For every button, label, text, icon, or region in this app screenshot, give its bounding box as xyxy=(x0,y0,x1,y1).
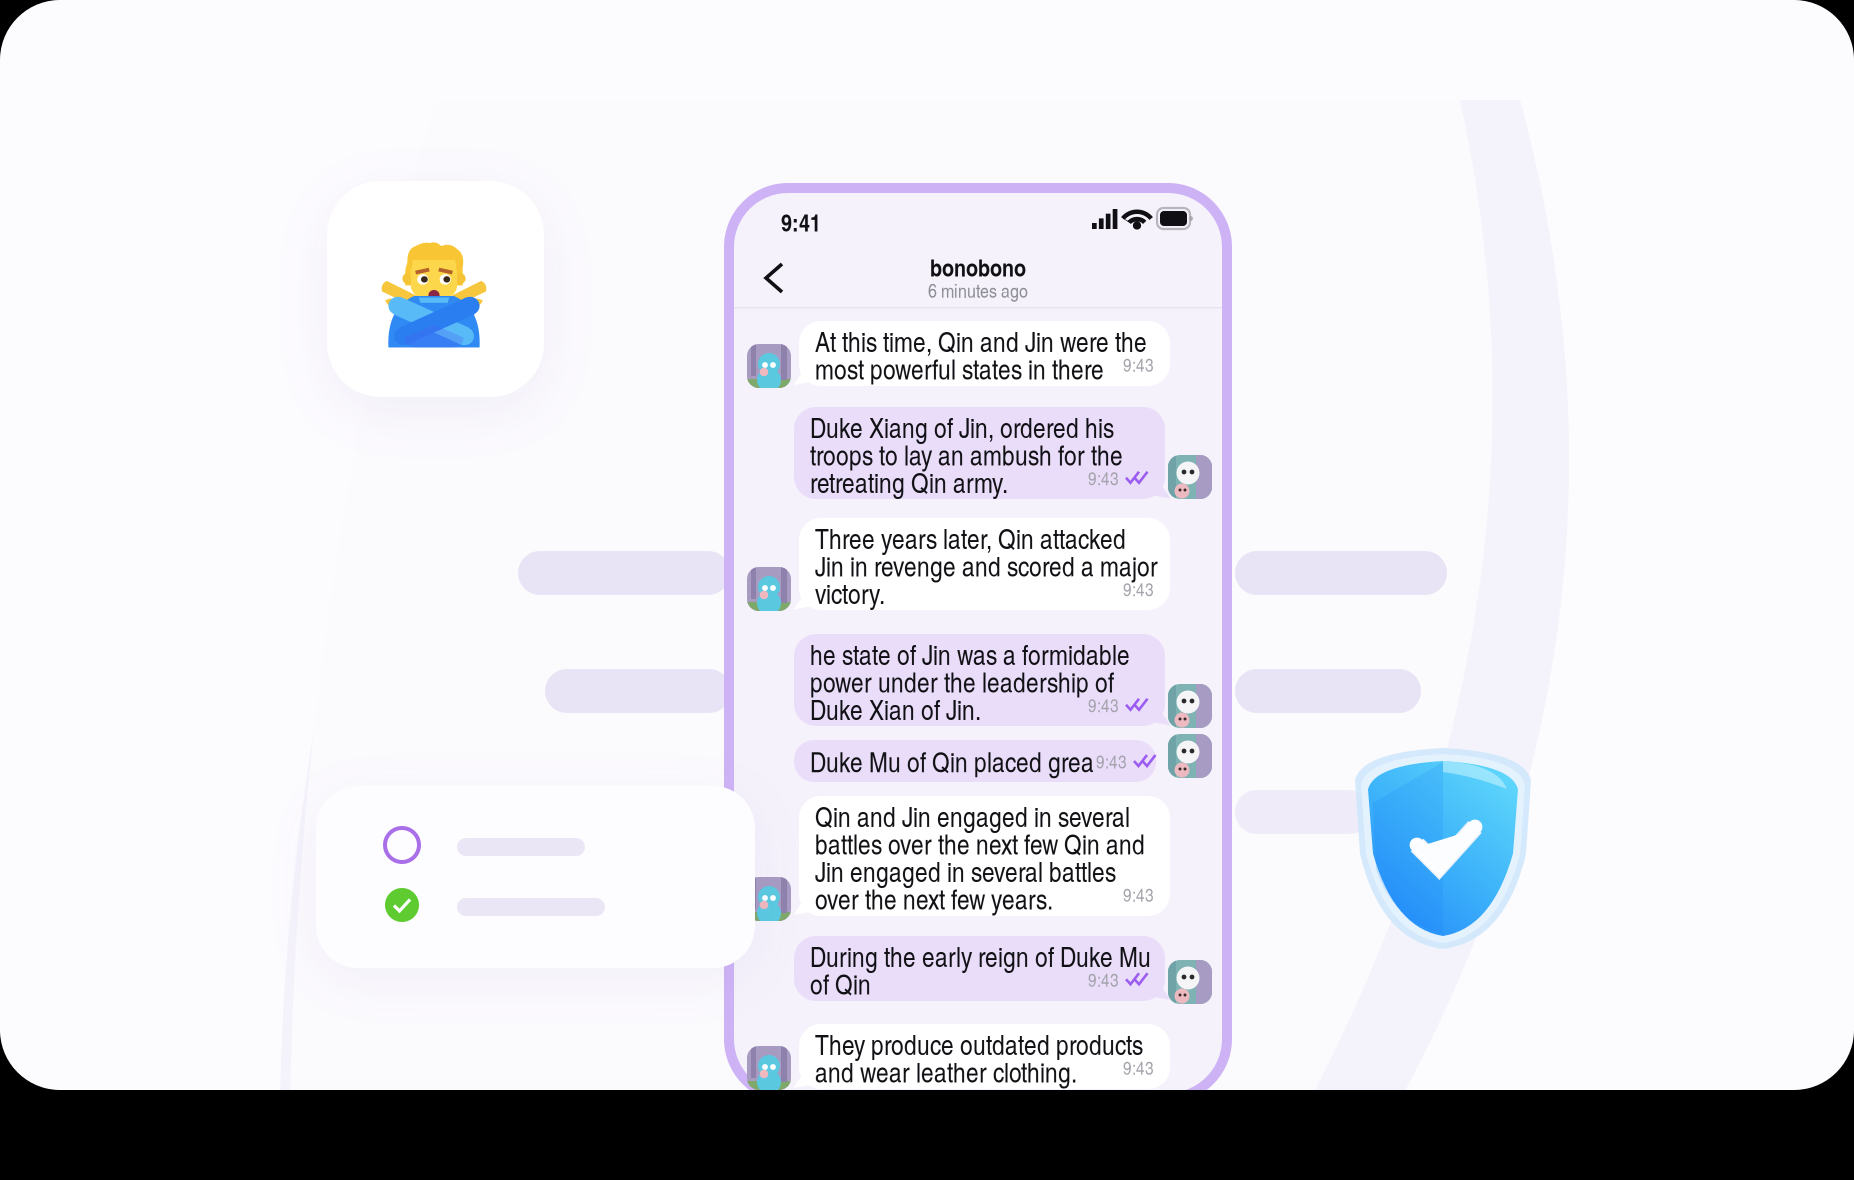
staticText: troops to lay an ambush for the xyxy=(810,435,1123,463)
staticText: Duke Mu of Qin placed grea xyxy=(810,742,1094,780)
staticText: 9:43 xyxy=(1123,881,1154,907)
staticText: over the next few years. xyxy=(815,879,1053,907)
staticText: bonobono xyxy=(930,250,1026,284)
staticText: Duke Xiang of Jin, ordered his xyxy=(810,408,1114,435)
staticText: 9:43 xyxy=(1088,692,1119,718)
button[interactable]: Back xyxy=(740,246,812,310)
staticText: Jin engaged in several battles xyxy=(815,852,1116,879)
staticText: 9:43 xyxy=(1088,465,1119,491)
staticText: 9:41 xyxy=(781,205,821,239)
staticText: 9:43 xyxy=(1096,748,1127,774)
staticText: he state of Jin was a formidable xyxy=(810,635,1130,662)
staticText: most powerful states in there xyxy=(815,349,1104,377)
staticText: battles over the next few Qin and xyxy=(815,824,1145,852)
staticText: 6 minutes ago xyxy=(928,277,1028,303)
staticText: They produce outdated products xyxy=(815,1025,1143,1052)
staticText: retreating Qin army. xyxy=(810,463,1008,490)
staticText: 9:43 xyxy=(1123,351,1154,377)
staticText: 9:43 xyxy=(1123,576,1154,602)
staticText: power under the leadership of xyxy=(810,662,1114,690)
staticText: 9:43 xyxy=(1088,966,1119,992)
staticText: 9:43 xyxy=(1123,1054,1154,1080)
staticText: Qin and Jin engaged in several xyxy=(815,797,1130,824)
staticText: victory. xyxy=(815,574,885,601)
staticText: of Qin xyxy=(810,964,871,992)
staticText: Duke Xian of Jin. xyxy=(810,690,981,717)
staticText: At this time, Qin and Jin were the xyxy=(815,322,1147,349)
staticText: and wear leather clothing. xyxy=(815,1052,1077,1080)
staticText: During the early reign of Duke Mu xyxy=(810,937,1151,964)
staticText: Three years later, Qin attacked xyxy=(815,519,1126,546)
staticText: Jin in revenge and scored a major xyxy=(815,546,1158,574)
